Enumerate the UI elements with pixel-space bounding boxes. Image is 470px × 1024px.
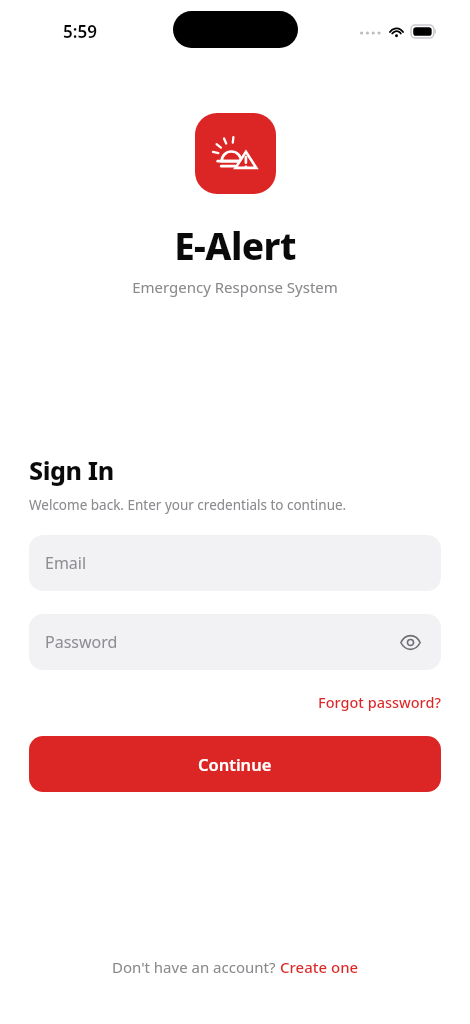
button[interactable]: Forgot password? [318, 690, 441, 714]
staticText: Emergency Response System [0, 277, 470, 297]
button[interactable]: Continue [29, 736, 441, 792]
staticText: Create one [280, 957, 359, 977]
button[interactable]: Password [29, 614, 441, 670]
staticText: E-Alert [0, 220, 470, 270]
staticText: Welcome back. Enter your credentials to … [29, 496, 347, 514]
staticText: Don't have an account? [112, 957, 280, 977]
staticText: Continue [198, 753, 272, 775]
staticText: 5:59 [63, 20, 97, 43]
button[interactable]: Email [29, 535, 441, 591]
staticText: Forgot password? [318, 692, 441, 712]
staticText: Email [45, 552, 87, 574]
button[interactable]: Show password [395, 627, 425, 657]
staticText: Password [45, 631, 118, 653]
staticText: Sign In [29, 453, 114, 487]
button[interactable]: Create one [280, 957, 359, 977]
